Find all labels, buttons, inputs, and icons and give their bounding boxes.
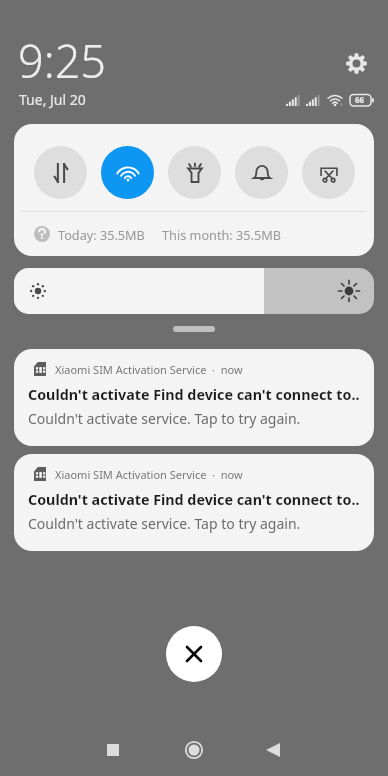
button[interactable]: Xiaomi SIM Activation Service · now	[14, 349, 374, 446]
button[interactable]: Today: 35.5MB	[14, 212, 374, 256]
button[interactable]: Flashlight	[168, 146, 221, 199]
staticText: Today: 35.5MB	[58, 226, 145, 243]
staticText: Xiaomi SIM Activation Service · now	[55, 467, 243, 482]
button[interactable]: Mobile data	[34, 146, 87, 199]
button[interactable]: Screenshot	[302, 146, 355, 199]
button[interactable]: Wi-Fi	[101, 146, 154, 199]
staticText: Couldn't activate Find device can't conn…	[28, 385, 372, 404]
staticText: Tue, Jul 20	[19, 90, 86, 109]
staticText: Xiaomi SIM Activation Service · now	[55, 362, 243, 377]
staticText: This month: 35.5MB	[162, 226, 281, 243]
button[interactable]: Close	[166, 626, 222, 682]
staticText: Couldn't activate service. Tap to try ag…	[28, 514, 372, 533]
staticText: Couldn't activate Find device can't conn…	[28, 490, 372, 509]
button[interactable]	[14, 268, 374, 314]
button[interactable]: Settings	[339, 46, 373, 80]
button[interactable]: Do not disturb	[235, 146, 288, 199]
button[interactable]: Back	[249, 726, 297, 774]
staticText: Couldn't activate service. Tap to try ag…	[28, 409, 372, 428]
button[interactable]: Xiaomi SIM Activation Service · now	[14, 454, 374, 551]
staticText: 66	[355, 94, 365, 105]
staticText: 9:25	[18, 30, 107, 91]
button[interactable]: Home	[170, 726, 218, 774]
button[interactable]: Recent apps	[89, 726, 137, 774]
